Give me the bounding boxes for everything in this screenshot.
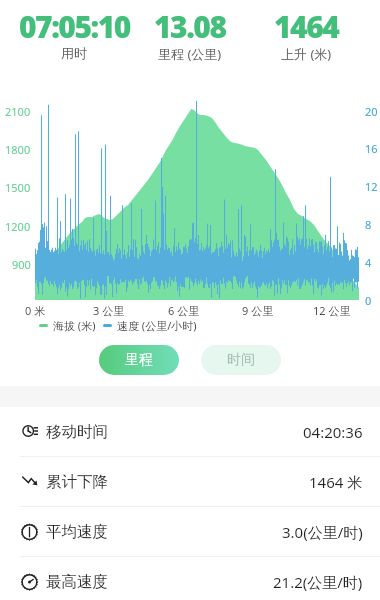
staticText: 上升 (米) (281, 45, 332, 63)
staticText: 07:05:10 (19, 6, 130, 47)
button[interactable]: 移动时间 (0, 407, 380, 457)
staticText: 时间 (227, 351, 255, 369)
staticText: 6 公里 (168, 303, 200, 318)
staticText: 4 (365, 255, 372, 270)
staticText: 04:20:36 (303, 422, 363, 442)
staticText: 最高速度 (46, 572, 108, 592)
button[interactable]: 平均速度 (0, 507, 380, 557)
button[interactable]: 里程 (99, 345, 179, 375)
staticText: 里程 (公里) (158, 45, 222, 63)
staticText: 8 (365, 217, 372, 232)
staticText: 0 (365, 293, 372, 308)
button[interactable]: 累计下降 (0, 457, 380, 507)
staticText: 移动时间 (46, 422, 108, 442)
staticText: 3.0(公里/时) (282, 522, 363, 542)
staticText: 累计下降 (46, 472, 108, 492)
staticText: 13.08 (154, 6, 226, 47)
staticText: 用时 (61, 45, 87, 61)
staticText: 2100 (5, 104, 31, 119)
staticText: 900 (12, 257, 31, 272)
staticText: 里程 (125, 351, 153, 369)
staticText: 1464 米 (309, 472, 363, 492)
staticText: 1800 (5, 142, 31, 157)
staticText: 12 (365, 179, 378, 194)
staticText: 1464 (274, 6, 339, 47)
staticText: 速度 (公里/小时) (117, 318, 197, 333)
staticText: 16 (365, 141, 378, 156)
button[interactable]: 最高速度 (0, 557, 380, 600)
button[interactable]: 时间 (201, 345, 281, 375)
staticText: 平均速度 (46, 522, 108, 542)
staticText: 3 公里 (93, 303, 125, 318)
staticText: 12 公里 (313, 303, 351, 318)
staticText: 21.2(公里/时) (273, 572, 363, 592)
staticText: 1500 (5, 180, 31, 195)
staticText: 0 米 (25, 303, 46, 318)
staticText: 海拔 (米) (53, 318, 96, 333)
staticText: 9 公里 (242, 303, 274, 318)
staticText: 20 (365, 104, 378, 119)
staticText: 1200 (5, 219, 31, 234)
